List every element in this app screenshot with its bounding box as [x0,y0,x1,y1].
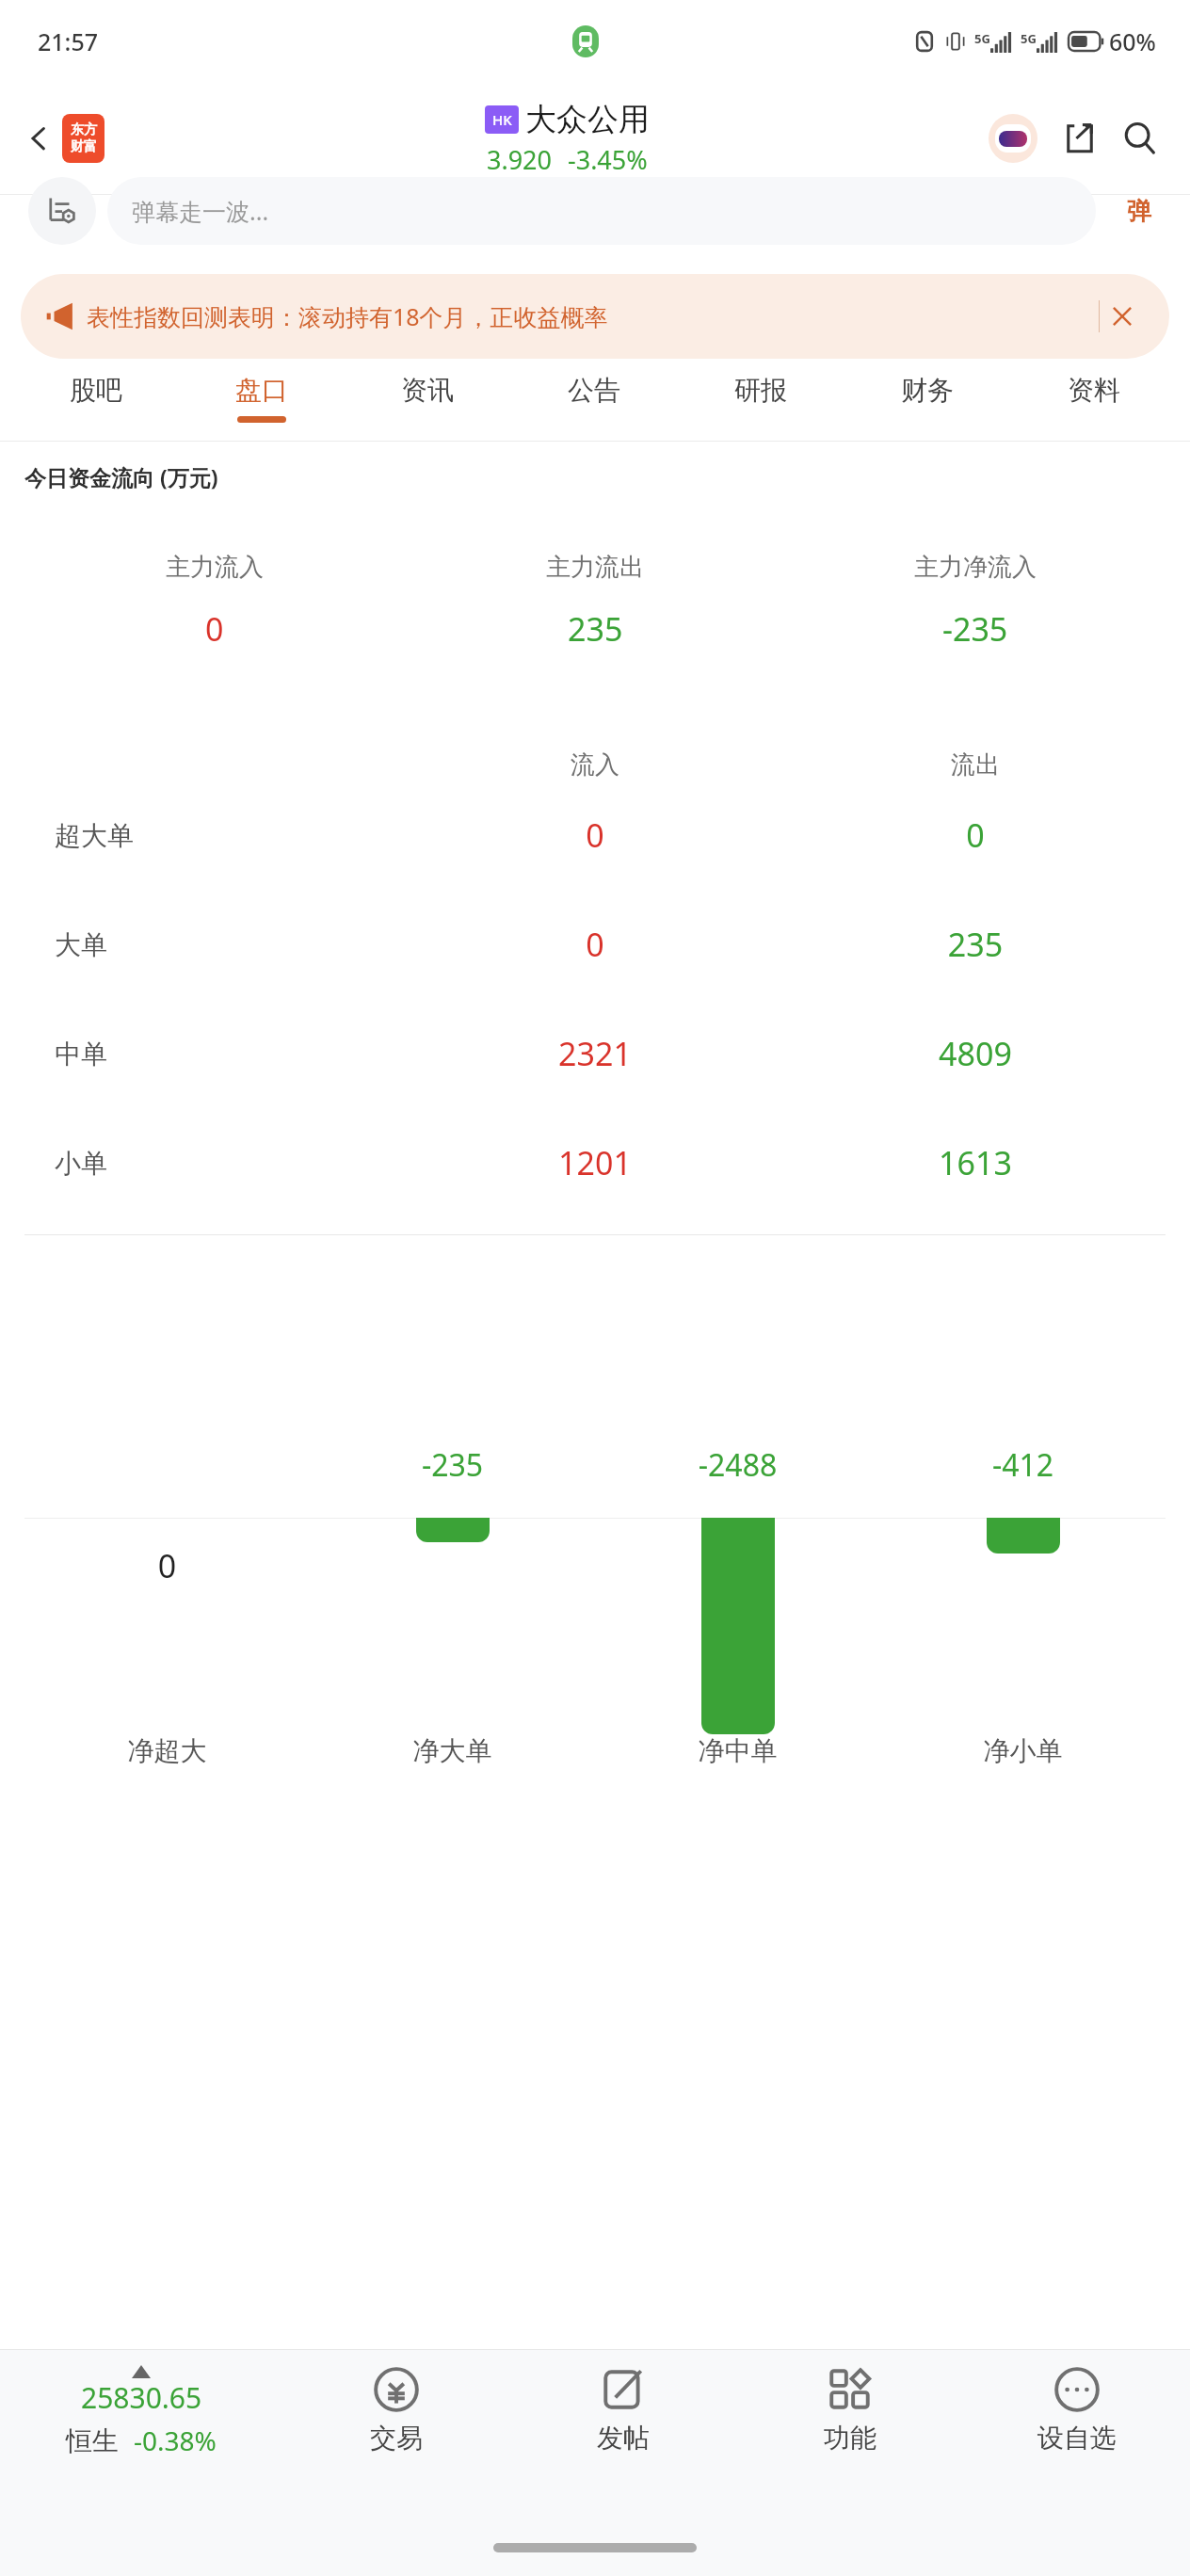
button[interactable]: 交易 [282,2350,509,2520]
staticText: 净中单 [595,1734,880,1767]
staticText: 中单 [55,1038,405,1071]
staticText: 表性指数回测表明：滚动持有18个月，正收益概率 [87,300,1099,332]
staticText: 大众公用 [525,100,650,139]
button[interactable]: 盘口 [179,359,345,442]
staticText: 流入 [405,749,785,781]
button[interactable]: 关闭 [1100,294,1145,339]
staticText: 功能 [824,2422,876,2455]
staticText: 超大单 [55,819,405,852]
staticText: -235 [310,1444,595,1486]
button[interactable]: AI助手 [985,110,1041,167]
button[interactable]: 研报 [677,359,844,442]
staticText: 财务 [901,374,954,407]
staticText: 东方 [71,121,97,138]
button[interactable]: 资讯 [345,359,510,442]
button[interactable]: 超大单 [24,781,1166,890]
staticText: 财富 [71,138,97,155]
button[interactable]: 资料 [1010,359,1177,442]
staticText: -2488 [595,1444,880,1486]
staticText: 1201 [405,1141,785,1184]
staticText: 5G [974,30,990,47]
staticText: 净小单 [880,1734,1166,1767]
staticText: 21:57 [38,25,99,57]
staticText: 今日资金流向 (万元) [24,462,218,491]
button[interactable]: 搜索 [1115,113,1166,164]
staticText: -235 [942,607,1008,651]
staticText: 净大单 [310,1734,595,1767]
staticText: 大单 [55,928,405,961]
button[interactable]: 弹幕设置 [28,177,96,245]
staticText: 60% [1109,25,1156,57]
staticText: -0.38% [134,2423,217,2458]
staticText: 净超大 [24,1734,310,1767]
staticText: 0 [24,1544,310,1587]
button[interactable]: 25830.65 [0,2350,282,2520]
button[interactable]: 弹幕走一波... [107,177,1096,245]
staticText: 主力流入 [166,552,264,583]
button[interactable]: 发弹幕 [1109,181,1169,241]
staticText: 4809 [785,1032,1166,1075]
button[interactable]: 表性指数回测表明：滚动持有18个月，正收益概率 [21,274,1169,359]
staticText: 235 [568,607,623,651]
staticText: 3.920 [487,142,553,177]
staticText: 设自选 [1037,2422,1117,2455]
staticText: 资料 [1068,374,1120,407]
staticText: 发帖 [597,2422,650,2455]
staticText: -3.45% [568,142,648,177]
button[interactable]: 大单 [24,890,1166,999]
staticText: HK [492,110,512,129]
button[interactable]: 股吧 [13,359,179,442]
staticText: 0 [405,813,785,857]
staticText: 流出 [785,749,1166,781]
staticText: 股吧 [70,374,122,407]
button[interactable]: 财务 [844,359,1010,442]
button[interactable]: 功能 [736,2350,963,2520]
button[interactable]: 发帖 [509,2350,736,2520]
staticText: 研报 [734,374,787,407]
staticText: 恒生 [66,2424,119,2457]
staticText: 2321 [405,1032,785,1075]
staticText: 0 [205,607,224,651]
button[interactable]: 公告 [510,359,677,442]
button[interactable]: 返回 [17,106,112,170]
staticText: 235 [785,923,1166,966]
staticText: 弹 [1127,196,1151,227]
staticText: 主力净流入 [914,552,1037,583]
staticText: 5G [1021,30,1037,47]
staticText: 0 [405,923,785,966]
button[interactable]: 小单 [24,1108,1166,1217]
staticText: 主力流出 [546,552,644,583]
button[interactable]: 主力流入 [24,508,1166,731]
staticText: 小单 [55,1147,405,1180]
staticText: -412 [880,1444,1166,1486]
staticText: 公告 [568,374,620,407]
staticText: 0 [785,813,1166,857]
staticText: 盘口 [235,374,288,407]
button[interactable]: 中单 [24,999,1166,1108]
button[interactable]: 分享 [1054,113,1105,164]
button[interactable]: 设自选 [963,2350,1190,2520]
staticText: 资讯 [401,374,454,407]
staticText: 弹幕走一波... [132,195,269,227]
staticText: 交易 [370,2422,423,2455]
staticText: 1613 [785,1141,1166,1184]
staticText: 25830.65 [81,2378,202,2417]
